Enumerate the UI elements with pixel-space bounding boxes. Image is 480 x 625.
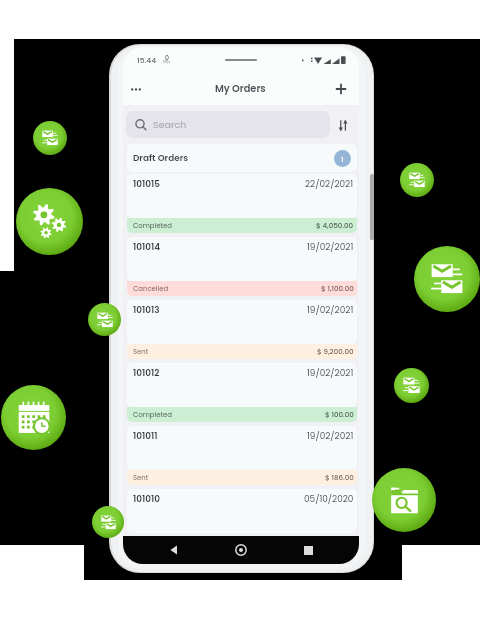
button[interactable]: doc [372, 468, 436, 532]
staticText: 0 [165, 53, 169, 62]
staticText: 19/02/2021 [307, 430, 354, 442]
button[interactable]: mail [33, 121, 67, 155]
button[interactable]: mail [414, 246, 480, 312]
staticText: 101011 [133, 430, 158, 442]
staticText: Cancelled [133, 284, 169, 294]
button[interactable]: 101011 [127, 426, 357, 470]
button[interactable]: 101014 [127, 237, 357, 281]
button[interactable]: Draft Orders [127, 144, 357, 172]
staticText: 19/02/2021 [307, 241, 354, 253]
staticText: Completed [133, 221, 172, 231]
staticText: $ 1,100.00 [321, 284, 354, 294]
button[interactable]: calendar [1, 385, 66, 450]
button[interactable]: 101012 [127, 363, 357, 407]
button[interactable]: mail [88, 303, 121, 336]
staticText: 101014 [133, 241, 161, 253]
staticText: Draft Orders [133, 152, 189, 164]
staticText: Sent [133, 347, 149, 357]
staticText: $ 4,050.00 [316, 221, 354, 231]
button[interactable]: mail [400, 163, 434, 197]
staticText: $ 100.00 [325, 410, 354, 420]
button[interactable]: Search [126, 111, 330, 138]
staticText: Completed [133, 410, 172, 420]
staticText: 101013 [133, 304, 160, 316]
button[interactable]: Recents [297, 539, 319, 561]
staticText: KB/s [163, 60, 171, 64]
button[interactable]: Sort [330, 112, 356, 138]
button[interactable]: Add order [329, 76, 353, 102]
staticText: 1 [341, 154, 344, 164]
button[interactable]: gears [16, 188, 83, 255]
button[interactable]: Home [230, 539, 252, 561]
staticText: 19/02/2021 [307, 367, 354, 379]
staticText: My Orders [215, 82, 266, 96]
button[interactable]: 101015 [127, 174, 357, 218]
button[interactable]: 101013 [127, 300, 357, 344]
staticText: 05/10/2020 [304, 493, 354, 505]
staticText: 19/02/2021 [307, 304, 354, 316]
staticText: 22/02/2021 [305, 178, 354, 190]
staticText: Sent [133, 473, 149, 483]
button[interactable]: More options [124, 76, 148, 102]
staticText: $ 9,200.00 [317, 347, 354, 357]
button[interactable]: mail [394, 368, 429, 403]
staticText: $ 186.00 [325, 473, 354, 483]
staticText: Search [153, 118, 187, 131]
staticText: 15.44 [137, 55, 157, 66]
button[interactable]: Back [163, 539, 185, 561]
button[interactable]: 101010 [127, 489, 357, 533]
button[interactable]: mail [92, 506, 124, 538]
staticText: 101010 [133, 493, 160, 505]
staticText: 101012 [133, 367, 160, 379]
staticText: 101015 [133, 178, 160, 190]
